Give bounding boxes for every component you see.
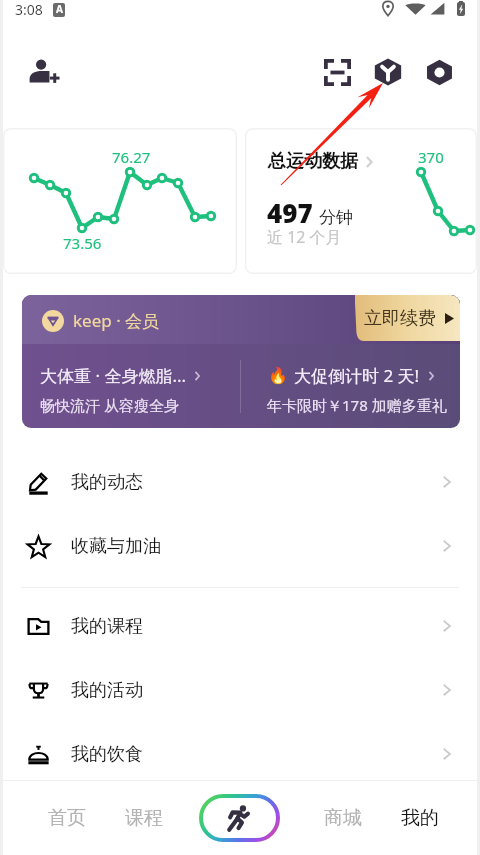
staticText: 年卡限时￥178 加赠多重礼: [267, 395, 447, 415]
staticText: 畅快流汗 从容瘦全身: [40, 395, 179, 415]
button[interactable]: Settings: [416, 49, 462, 95]
button[interactable]: Keep store: [365, 49, 411, 95]
staticText: 分钟: [319, 207, 353, 228]
staticText: 大体重 · 全身燃脂...: [40, 364, 187, 387]
button[interactable]: Scan QR code: [314, 49, 360, 95]
staticText: 我的饮食: [71, 743, 143, 766]
staticText: 76.27: [112, 147, 151, 167]
staticText: 近 12 个月: [267, 226, 342, 248]
button[interactable]: 课程: [104, 781, 184, 855]
staticText: 我的活动: [71, 679, 143, 702]
button[interactable]: 我的动态: [3, 450, 477, 514]
staticText: 收藏与加油: [71, 535, 161, 558]
staticText: 总运动数据: [268, 150, 358, 173]
staticText: 🔥: [268, 366, 288, 385]
staticText: 497: [267, 195, 313, 230]
staticText: 370: [418, 147, 444, 167]
button[interactable]: 收藏与加油: [3, 514, 477, 578]
staticText: A: [56, 3, 63, 16]
button[interactable]: 370: [245, 128, 477, 274]
button[interactable]: 立即续费: [335, 295, 460, 341]
button[interactable]: 首页: [27, 781, 107, 855]
button[interactable]: 我的: [380, 781, 460, 855]
staticText: 3:08: [15, 0, 43, 19]
button[interactable]: 我的课程: [3, 594, 477, 658]
button[interactable]: 我的饮食: [3, 722, 477, 786]
button[interactable]: 商城: [303, 781, 383, 855]
staticText: 我的课程: [71, 615, 143, 638]
staticText: keep · 会员: [73, 309, 160, 332]
button[interactable]: Add friend: [21, 49, 67, 95]
staticText: 大促倒计时 2 天!: [294, 364, 420, 387]
staticText: 首页: [48, 806, 86, 830]
staticText: 我的: [401, 806, 439, 830]
staticText: 73.56: [63, 233, 102, 253]
button[interactable]: 76.27: [3, 128, 237, 274]
staticText: 商城: [324, 806, 362, 830]
button[interactable]: keep · 会员: [22, 295, 460, 428]
staticText: 课程: [125, 806, 163, 830]
button[interactable]: 我的活动: [3, 658, 477, 722]
button[interactable]: Start workout: [199, 794, 280, 842]
staticText: 我的动态: [71, 471, 143, 494]
staticText: 立即续费: [364, 307, 436, 330]
